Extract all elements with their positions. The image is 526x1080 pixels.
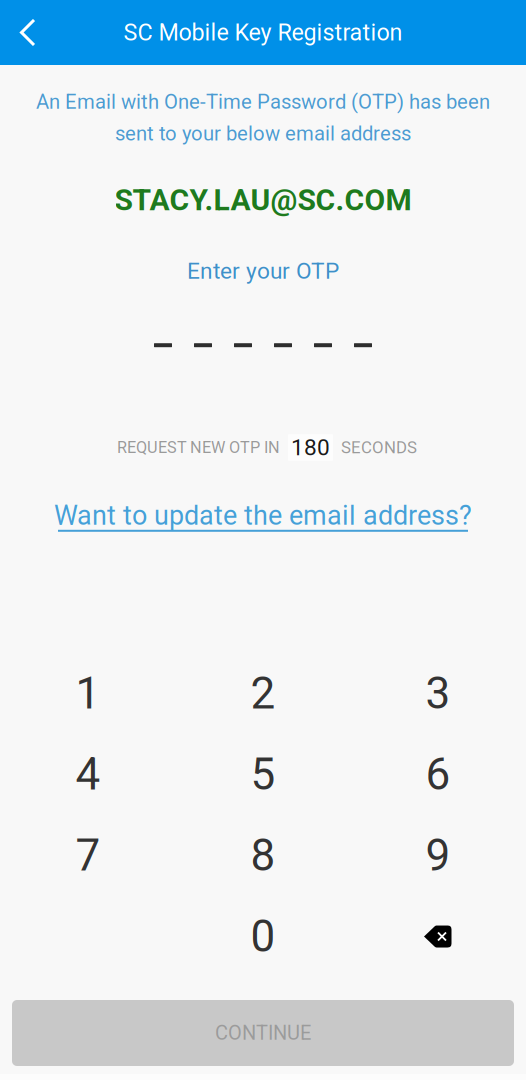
button[interactable]: 0 [175, 896, 350, 977]
button[interactable]: 9 [350, 815, 525, 896]
staticText: 4 [75, 749, 100, 800]
staticText: 9 [425, 830, 450, 881]
staticText: SECONDS [341, 438, 417, 457]
staticText: Want to update the email address? [54, 500, 472, 531]
staticText: 5 [250, 749, 275, 800]
staticText: Enter your OTP [187, 258, 339, 284]
button[interactable]: 1 [0, 653, 175, 734]
staticText: 3 [425, 668, 450, 719]
staticText: 8 [250, 830, 275, 881]
staticText: An Email with One-Time Password (OTP) ha… [36, 90, 490, 114]
staticText: REQUEST NEW OTP IN [117, 438, 280, 457]
button[interactable]: Back [0, 0, 56, 65]
staticText: 7 [75, 830, 100, 881]
button[interactable]: 5 [175, 734, 350, 815]
staticText: sent to your below email address [115, 122, 411, 146]
staticText: 0 [250, 911, 275, 962]
button[interactable]: 4 [0, 734, 175, 815]
button[interactable]: Want to update the email address? [43, 500, 483, 538]
button[interactable]: Delete [350, 896, 525, 977]
staticText: 180 [291, 434, 330, 461]
button[interactable]: 8 [175, 815, 350, 896]
staticText: CONTINUE [215, 1021, 311, 1045]
staticText: 2 [250, 668, 275, 719]
button[interactable]: 3 [350, 653, 525, 734]
staticText: SC Mobile Key Registration [123, 19, 402, 46]
button[interactable]: CONTINUE [12, 1000, 514, 1066]
staticText: STACY.LAU@SC.COM [114, 182, 411, 218]
staticText: 1 [75, 668, 100, 719]
button[interactable]: 6 [350, 734, 525, 815]
staticText: 6 [425, 749, 450, 800]
button[interactable]: 2 [175, 653, 350, 734]
button[interactable]: 7 [0, 815, 175, 896]
